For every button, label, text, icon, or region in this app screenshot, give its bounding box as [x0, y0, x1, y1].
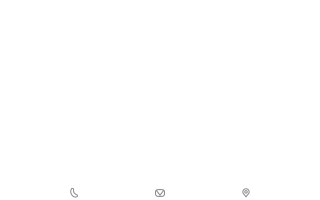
button[interactable]: Call: [31, 170, 117, 200]
button[interactable]: Mail: [117, 170, 203, 200]
button[interactable]: Directions: [203, 170, 289, 200]
